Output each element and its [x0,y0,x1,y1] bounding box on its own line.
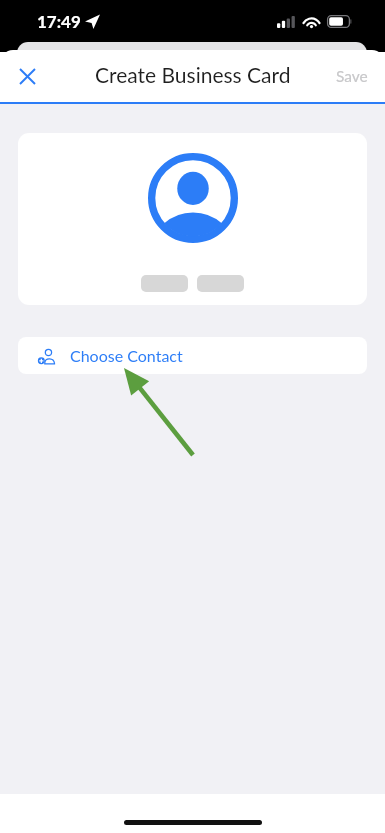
button[interactable]: Choose Contact [18,337,367,374]
staticText: 17:49 [37,11,81,31]
button[interactable]: Close [5,54,50,99]
button[interactable]: Save [319,57,385,96]
staticText: Create Business Card [95,62,291,87]
staticText: Choose Contact [70,346,183,365]
staticText: Save [336,67,368,86]
